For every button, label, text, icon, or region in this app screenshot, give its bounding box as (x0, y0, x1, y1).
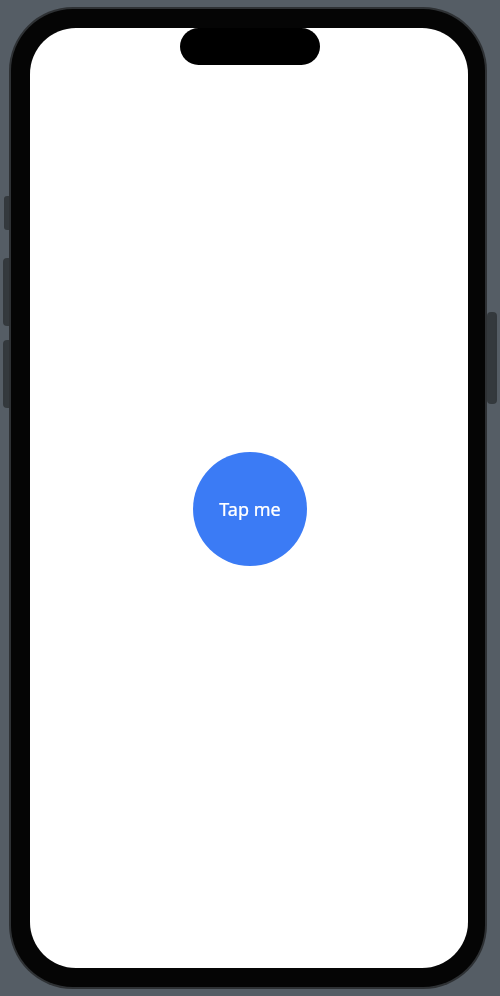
staticText: Tap me (219, 497, 281, 522)
other: Dynamic Island (180, 28, 320, 65)
button[interactable]: Tap me (193, 452, 307, 566)
